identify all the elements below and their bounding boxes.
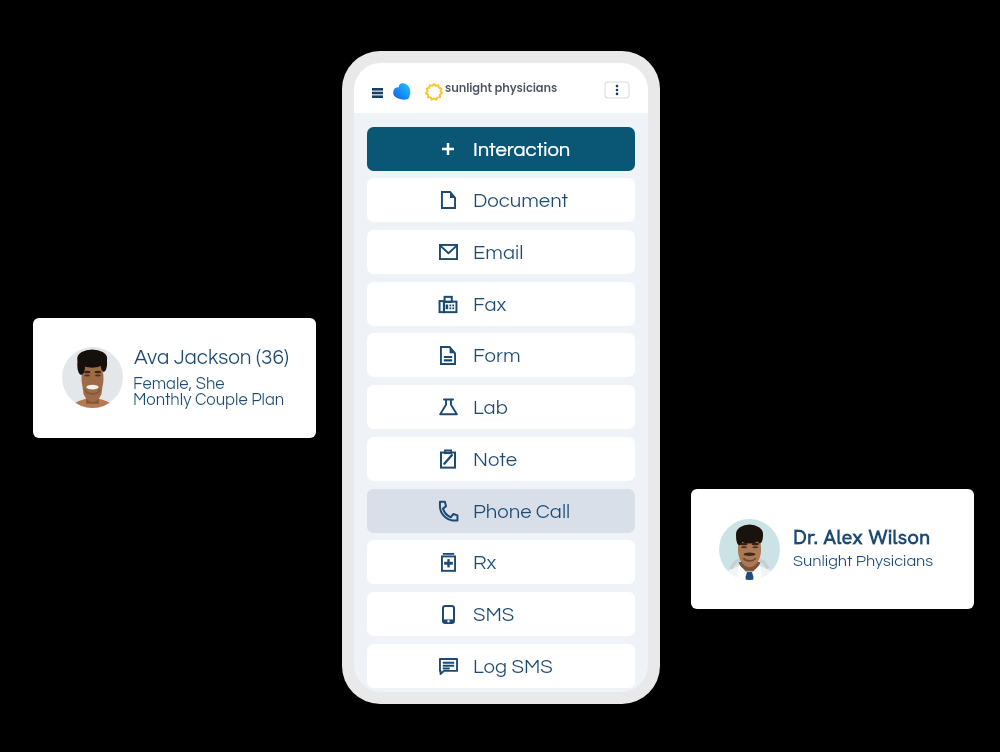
button[interactable]: Note: [367, 437, 635, 481]
staticText: Ava Jackson (36): [134, 347, 289, 368]
button[interactable]: Phone Call: [367, 489, 635, 533]
staticText: Dr. Alex Wilson: [793, 524, 931, 551]
button[interactable]: Rx: [367, 540, 635, 584]
button[interactable]: Fax: [367, 282, 635, 326]
button[interactable]: Dr. Alex Wilson: [691, 489, 974, 609]
staticText: Note: [473, 449, 518, 470]
staticText: Sunlight Physicians: [793, 553, 934, 570]
button[interactable]: Ava Jackson (36): [33, 318, 316, 438]
staticText: Female, She: [133, 375, 225, 392]
staticText: SMS: [473, 604, 515, 625]
staticText: Log SMS: [473, 656, 553, 677]
staticText: Form: [473, 345, 521, 366]
staticText: Monthly Couple Plan: [133, 391, 285, 408]
staticText: Fax: [473, 294, 507, 315]
button[interactable]: Email: [367, 230, 635, 274]
button[interactable]: More options: [605, 82, 629, 98]
staticText: Rx: [473, 552, 497, 573]
staticText: Interaction: [473, 139, 571, 160]
staticText: Document: [473, 190, 569, 211]
button[interactable]: Document: [367, 178, 635, 222]
staticText: sunlight physicians: [445, 80, 558, 96]
staticText: Email: [473, 242, 524, 263]
button[interactable]: Interaction: [367, 127, 635, 171]
button[interactable]: SMS: [367, 592, 635, 636]
staticText: Lab: [473, 397, 508, 418]
button[interactable]: Lab: [367, 385, 635, 429]
button[interactable]: Form: [367, 333, 635, 377]
button[interactable]: Log SMS: [367, 644, 635, 688]
button[interactable]: Menu: [365, 81, 389, 105]
staticText: Phone Call: [473, 501, 571, 522]
